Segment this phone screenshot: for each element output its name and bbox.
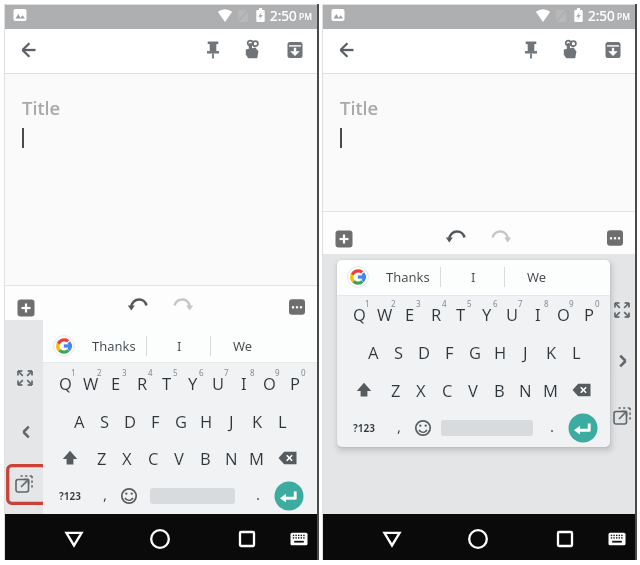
button[interactable]: Q <box>20 368 110 398</box>
button[interactable] <box>236 528 258 550</box>
button[interactable]: I <box>199 368 289 398</box>
button[interactable]: , <box>354 411 444 441</box>
button[interactable]: X <box>82 443 172 473</box>
button[interactable] <box>601 38 625 62</box>
button[interactable] <box>554 528 576 550</box>
button[interactable] <box>53 335 75 357</box>
button[interactable] <box>612 300 632 320</box>
button[interactable] <box>322 74 637 211</box>
button[interactable] <box>14 474 34 494</box>
button[interactable]: W <box>46 368 136 398</box>
button[interactable]: K <box>212 406 302 436</box>
button[interactable] <box>127 293 151 317</box>
button[interactable] <box>63 528 85 550</box>
button[interactable] <box>606 528 628 550</box>
button[interactable]: I <box>493 299 583 329</box>
button[interactable] <box>381 528 403 550</box>
button[interactable] <box>17 38 41 62</box>
button[interactable]: B <box>454 375 544 405</box>
button[interactable]: C <box>402 375 492 405</box>
button[interactable] <box>613 351 633 371</box>
button[interactable]: T <box>122 368 212 398</box>
button[interactable]: A <box>34 406 124 436</box>
button[interactable]: R <box>391 299 481 329</box>
button[interactable]: L <box>531 337 610 367</box>
button[interactable]: ?123 <box>337 413 409 443</box>
button[interactable] <box>519 38 543 62</box>
button[interactable]: H <box>161 406 251 436</box>
button[interactable] <box>606 229 624 247</box>
button[interactable] <box>288 528 310 550</box>
button[interactable] <box>4 74 319 285</box>
button[interactable]: N <box>186 443 276 473</box>
button[interactable] <box>335 38 359 62</box>
button[interactable]: M <box>505 375 595 405</box>
button[interactable]: I <box>428 262 518 292</box>
button[interactable]: P <box>544 299 610 329</box>
button[interactable] <box>15 368 35 388</box>
button[interactable]: P <box>250 368 340 398</box>
button[interactable]: C <box>108 443 198 473</box>
button[interactable]: L <box>237 406 327 436</box>
button[interactable]: J <box>186 406 276 436</box>
button[interactable] <box>335 230 353 248</box>
button[interactable]: X <box>376 375 466 405</box>
button[interactable] <box>120 487 138 505</box>
button[interactable] <box>17 299 35 317</box>
button[interactable] <box>354 380 374 400</box>
button[interactable] <box>558 38 582 62</box>
button[interactable] <box>347 266 369 288</box>
button[interactable] <box>288 298 306 316</box>
button[interactable] <box>201 38 225 62</box>
button[interactable]: S <box>354 337 444 367</box>
button[interactable]: B <box>160 443 250 473</box>
button[interactable]: H <box>455 337 545 367</box>
button[interactable]: K <box>506 337 596 367</box>
button[interactable]: V <box>428 375 518 405</box>
button[interactable]: F <box>110 406 200 436</box>
button[interactable]: E <box>71 368 161 398</box>
button[interactable]: W <box>340 299 430 329</box>
button[interactable]: R <box>97 368 187 398</box>
button[interactable]: Thanks <box>69 331 159 361</box>
button[interactable]: I <box>134 331 224 361</box>
button[interactable]: ?123 <box>25 481 115 511</box>
button[interactable]: , <box>60 479 150 509</box>
button[interactable]: . <box>507 411 597 441</box>
button[interactable] <box>240 38 264 62</box>
button[interactable]: T <box>416 299 506 329</box>
button[interactable]: Q <box>337 299 404 329</box>
button[interactable] <box>445 225 469 249</box>
button[interactable]: Z <box>57 443 147 473</box>
button[interactable]: Z <box>351 375 441 405</box>
button[interactable] <box>16 422 36 442</box>
button[interactable]: We <box>492 262 582 292</box>
button[interactable]: M <box>211 443 301 473</box>
button[interactable] <box>274 481 304 511</box>
button[interactable]: U <box>467 299 557 329</box>
button[interactable]: F <box>404 337 494 367</box>
button[interactable]: O <box>224 368 314 398</box>
button[interactable]: S <box>60 406 150 436</box>
button[interactable]: D <box>85 406 175 436</box>
button[interactable] <box>170 293 194 317</box>
button[interactable]: D <box>379 337 469 367</box>
button[interactable] <box>60 448 80 468</box>
button[interactable] <box>488 225 512 249</box>
button[interactable]: Y <box>148 368 238 398</box>
button[interactable]: J <box>480 337 570 367</box>
button[interactable] <box>149 528 171 550</box>
button[interactable] <box>467 528 489 550</box>
button[interactable]: Y <box>442 299 532 329</box>
button[interactable] <box>414 419 432 437</box>
button[interactable]: G <box>136 406 226 436</box>
button[interactable]: O <box>518 299 608 329</box>
button[interactable]: U <box>173 368 263 398</box>
button[interactable]: We <box>198 331 288 361</box>
button[interactable]: Thanks <box>363 262 453 292</box>
button[interactable]: N <box>480 375 570 405</box>
button[interactable] <box>571 379 593 401</box>
button[interactable] <box>568 413 598 443</box>
